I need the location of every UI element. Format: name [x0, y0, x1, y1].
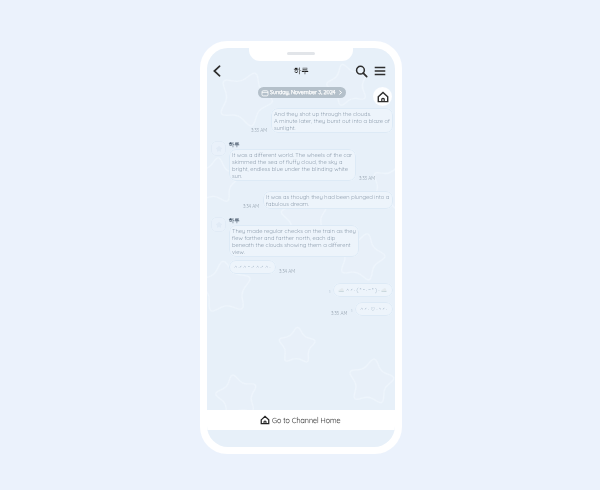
button[interactable]: Profile [211, 141, 226, 156]
staticText: 3:33 AM [359, 175, 376, 181]
staticText: 하루 [229, 217, 240, 224]
button[interactable]: They made regular checks on the train as… [229, 225, 359, 257]
staticText: ·ᐠ ·ᐟ ·ᐠ ᵕ ·ᐟ ·ᐠ ·ᐟ ·ᐠ · [234, 264, 271, 270]
staticText: Sunday, November 3, 2024 [270, 89, 336, 96]
button[interactable]: Menu [370, 61, 390, 81]
button[interactable]: It was as though they had been plunged i… [263, 191, 393, 209]
staticText: 3:34 AM [243, 203, 260, 209]
staticText: 하루 [294, 66, 309, 75]
staticText: 1 [351, 308, 353, 314]
button[interactable]: ☁ ·ᐠ ᐟ · ( * ᵕ · ᵕ * ) · ☁ [333, 283, 393, 297]
staticText: 3:34 AM [279, 268, 296, 274]
staticText: 3:35 AM [331, 310, 348, 316]
button[interactable]: Go to Channel Home [207, 410, 395, 430]
button[interactable]: ·ᐠ ᐟ · ♡ · ᐠ ᐟ · [355, 302, 393, 316]
staticText: ·ᐠ ᐟ · ♡ · ᐠ ᐟ · [360, 306, 388, 312]
staticText: Go to Channel Home [272, 416, 341, 425]
button[interactable]: It was a different world. The wheels of … [229, 149, 356, 181]
staticText: They made regular checks on the train as… [232, 227, 356, 255]
staticText: And they shot up through the clouds. A m… [274, 110, 390, 131]
button[interactable]: And they shot up through the clouds. A m… [271, 108, 393, 133]
staticText: 1 [329, 289, 331, 295]
button[interactable]: Profile [211, 217, 226, 232]
staticText: 3:33 AM [251, 127, 268, 133]
button[interactable]: Sunday, November 3, 2024 [258, 87, 346, 98]
staticText: It was as though they had been plunged i… [266, 193, 390, 207]
staticText: ☁ ·ᐠ ᐟ · ( * ᵕ · ᵕ * ) · ☁ [338, 287, 388, 293]
button[interactable]: Channel home [373, 87, 392, 106]
button[interactable]: Back [207, 61, 227, 81]
button[interactable]: Search [351, 61, 371, 81]
staticText: 하루 [229, 141, 240, 148]
button[interactable]: ·ᐠ ·ᐟ ·ᐠ ᵕ ·ᐟ ·ᐠ ·ᐟ ·ᐠ · [229, 260, 276, 274]
staticText: It was a different world. The wheels of … [232, 151, 353, 179]
